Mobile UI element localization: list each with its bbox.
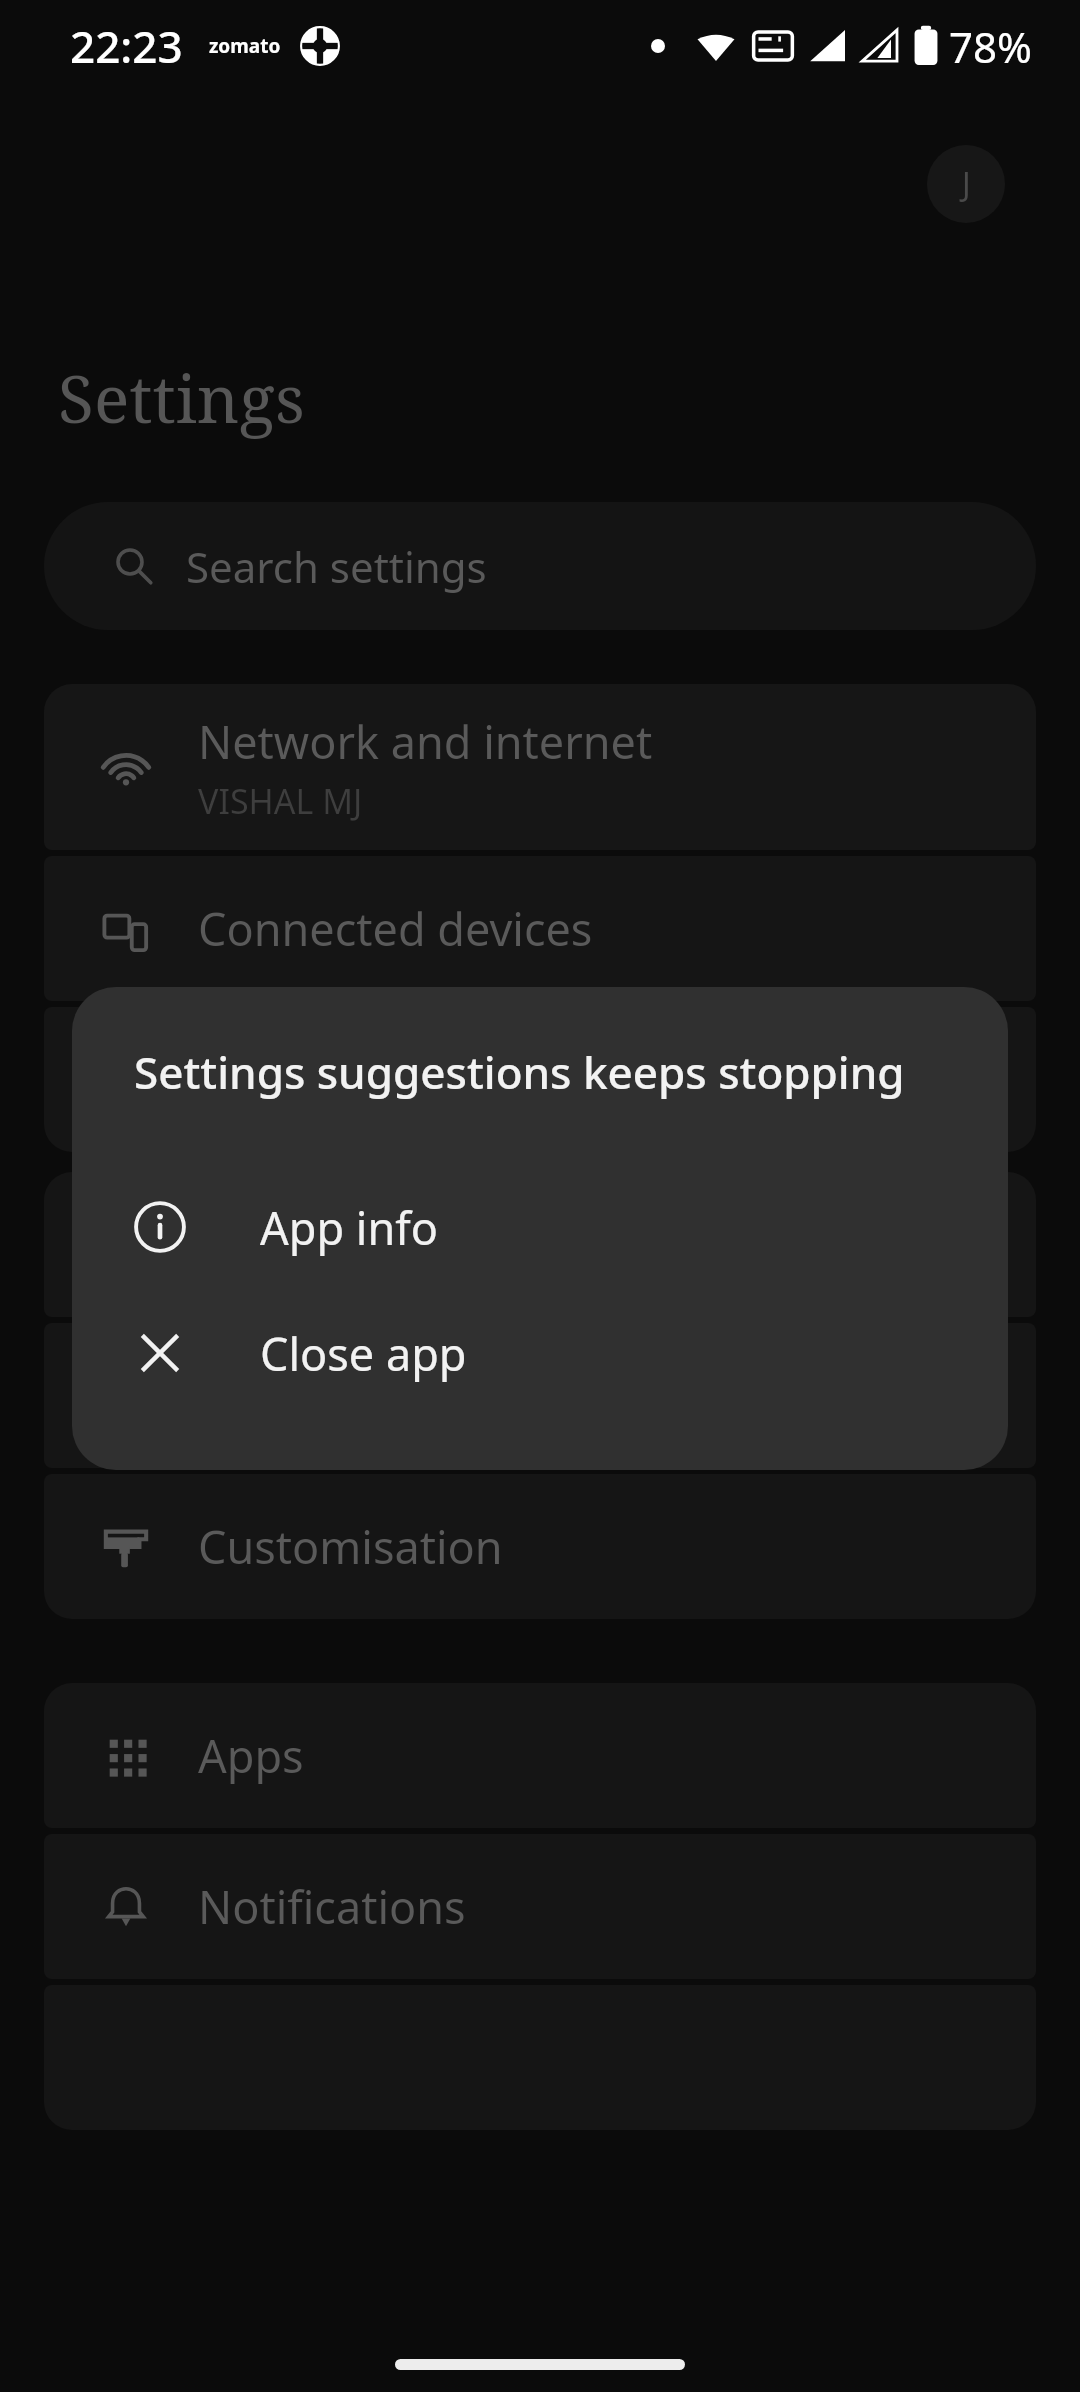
- button[interactable]: Notifications: [44, 1834, 1036, 1979]
- staticText: Search settings: [186, 538, 487, 595]
- button[interactable]: Lock screen: [44, 1323, 1036, 1468]
- staticText: Settings suggestions keeps stopping: [134, 1042, 905, 1102]
- staticText: J: [962, 162, 971, 206]
- staticText: Intelligence toolkit: [198, 1214, 592, 1275]
- button[interactable]: Connected devices: [44, 856, 1036, 1001]
- button[interactable]: Search settings: [44, 502, 1036, 630]
- button[interactable]: Account: [927, 145, 1005, 223]
- staticText: Close app: [260, 1323, 467, 1384]
- staticText: Settings: [58, 352, 305, 442]
- staticText: 78%: [949, 18, 1032, 75]
- staticText: VISHAL MJ: [198, 778, 363, 824]
- staticText: Apps: [198, 1725, 304, 1786]
- staticText: 22:23: [70, 16, 183, 76]
- button[interactable]: Close app: [72, 1290, 1008, 1416]
- staticText: zomato: [209, 33, 281, 59]
- staticText: Lock screen: [198, 1365, 446, 1426]
- staticText: Sound and vibration: [198, 1049, 626, 1110]
- button[interactable]: Customisation: [44, 1474, 1036, 1619]
- button[interactable]: App info: [72, 1164, 1008, 1290]
- staticText: Customisation: [198, 1516, 503, 1577]
- staticText: Network and internet: [198, 711, 653, 772]
- staticText: App info: [260, 1197, 438, 1258]
- button[interactable]: Network and internet: [44, 684, 1036, 850]
- staticText: Notifications: [198, 1876, 466, 1937]
- button[interactable]: Apps: [44, 1683, 1036, 1828]
- staticText: Connected devices: [198, 898, 593, 959]
- button[interactable]: Sound and vibration: [44, 1007, 1036, 1152]
- button[interactable]: Intelligence toolkit: [44, 1172, 1036, 1317]
